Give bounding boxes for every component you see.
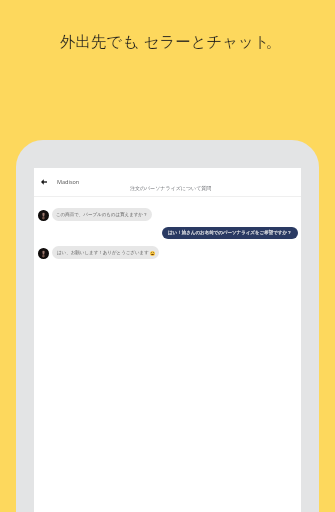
staticText: はい、お願いします！ありがとうございます bbox=[57, 250, 149, 256]
staticText: 注文のパーソナライズについて質問 bbox=[130, 185, 212, 191]
button[interactable]: この商品で、パープルのものは買えますか？ bbox=[52, 208, 152, 221]
button[interactable]: Back bbox=[38, 176, 49, 187]
staticText: はい！娘さんのお名前でのパーソナライズをご希望ですか？ bbox=[168, 230, 292, 236]
button[interactable]: はい！娘さんのお名前でのパーソナライズをご希望ですか？ bbox=[162, 227, 298, 239]
button[interactable]: はい、お願いします！ありがとうございます bbox=[52, 246, 159, 259]
staticText: 外出先でも、セラーとチャット。 bbox=[60, 32, 282, 51]
staticText: この商品で、パープルのものは買えますか？ bbox=[56, 212, 148, 218]
staticText: Madison bbox=[57, 178, 80, 185]
